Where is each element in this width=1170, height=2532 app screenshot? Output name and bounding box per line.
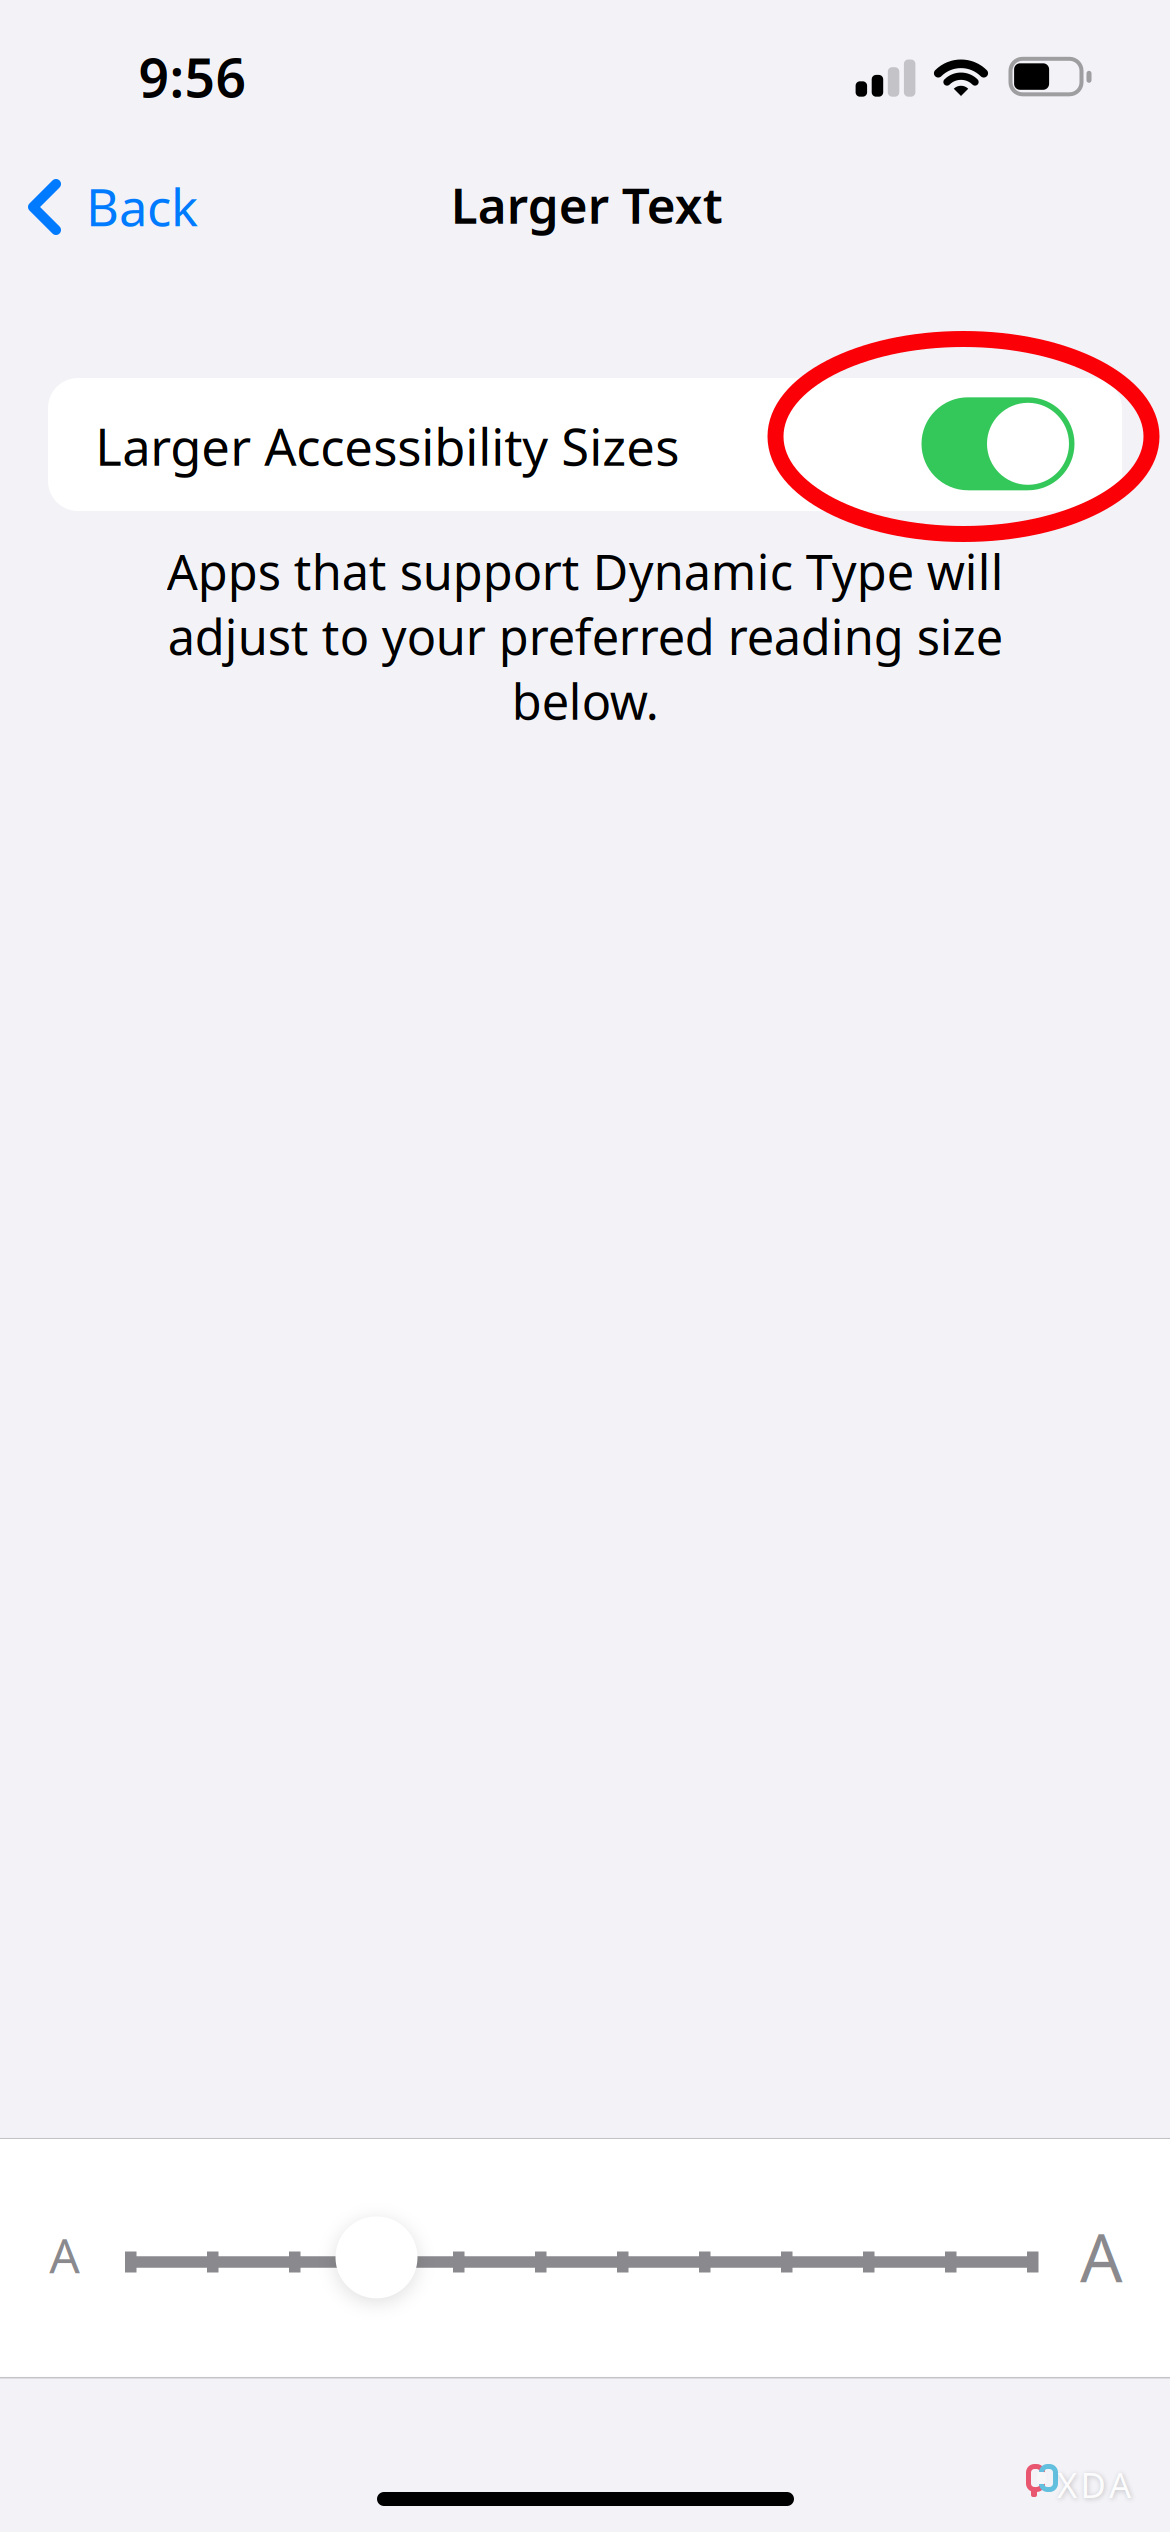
staticText: Larger Accessibility Sizes — [95, 412, 679, 481]
staticText: Larger Text — [451, 171, 723, 238]
button[interactable]: Back — [20, 160, 210, 250]
staticText: A — [49, 2222, 80, 2287]
button[interactable]: Text size — [335, 2216, 417, 2298]
staticText: Apps that support Dynamic Type will adju… — [166, 539, 1003, 733]
button[interactable]: Larger Accessibility Sizes — [48, 378, 1122, 511]
staticText: Back — [86, 172, 198, 241]
staticText: A — [1080, 2211, 1123, 2302]
staticText: 9:56 — [138, 40, 246, 113]
staticText: XDA — [1057, 2461, 1131, 2508]
button[interactable]: Larger Accessibility Sizes — [921, 397, 1074, 490]
